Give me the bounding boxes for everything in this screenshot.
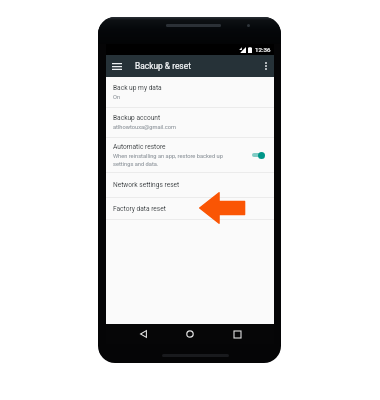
staticText: On	[113, 94, 121, 101]
staticText: When reinstalling an app, restore backed…	[113, 153, 226, 167]
button[interactable]: Home	[177, 324, 203, 344]
staticText: Factory data reset	[113, 205, 166, 213]
button[interactable]: Factory data reset	[106, 198, 274, 219]
staticText: Back up my data	[113, 84, 162, 92]
staticText: Backup & reset	[135, 61, 191, 71]
button[interactable]: More options	[257, 55, 274, 77]
staticText: Automatic restore	[113, 143, 166, 151]
button[interactable]: Automatic restore toggle	[251, 151, 265, 159]
button[interactable]: Navigation menu	[106, 55, 128, 77]
staticText: Backup account	[113, 114, 161, 122]
button[interactable]: Backup account	[106, 108, 274, 137]
button[interactable]: Back up my data	[106, 77, 274, 107]
staticText: atlhowtouxa@gmail.com	[113, 124, 176, 131]
button[interactable]: Network settings reset	[106, 173, 274, 197]
button[interactable]: Automatic restore	[106, 138, 274, 172]
button[interactable]: Back	[130, 324, 156, 344]
staticText: 12:36	[255, 46, 271, 53]
staticText: Network settings reset	[113, 181, 180, 189]
button[interactable]: Recent apps	[224, 324, 250, 344]
